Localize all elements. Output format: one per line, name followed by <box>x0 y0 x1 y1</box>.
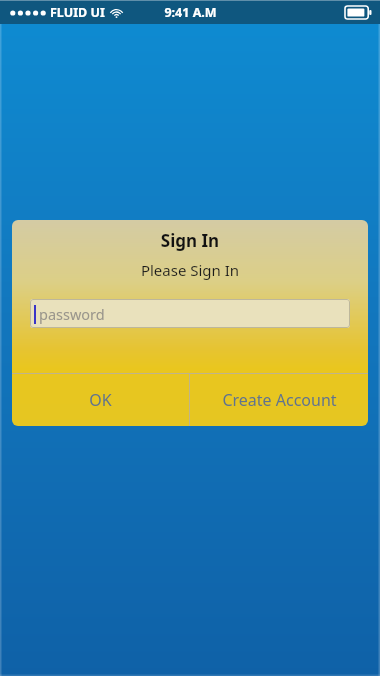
staticText: OK <box>89 389 112 411</box>
button[interactable]: Create Account <box>190 374 368 426</box>
staticText: FLUID UI <box>50 4 105 21</box>
staticText: password <box>39 304 105 324</box>
staticText: Sign In <box>12 229 368 252</box>
staticText: 9:41 A.M <box>164 4 217 21</box>
staticText: Create Account <box>222 389 337 411</box>
button[interactable]: Password field <box>30 299 350 328</box>
staticText: Please Sign In <box>12 260 368 280</box>
button[interactable]: OK <box>12 374 189 426</box>
